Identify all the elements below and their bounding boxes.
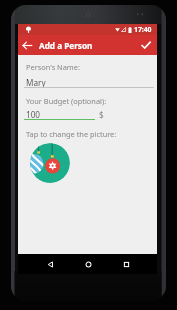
staticText: 100: [26, 109, 41, 120]
button[interactable]: Change the picture: [30, 143, 70, 183]
button[interactable]: Recent apps: [116, 254, 136, 274]
staticText: Tap to change the picture:: [26, 129, 117, 139]
button[interactable]: Save: [135, 35, 157, 55]
staticText: Your Budget (optional):: [26, 96, 107, 106]
staticText: Person's Name:: [26, 62, 80, 72]
button[interactable]: Home: [78, 254, 98, 274]
staticText: 17:40: [134, 25, 152, 34]
staticText: Add a Person: [39, 40, 93, 51]
staticText: Mary: [26, 77, 46, 88]
button[interactable]: Back: [40, 254, 60, 274]
button[interactable]: Navigate up: [18, 35, 37, 55]
staticText: $: [99, 109, 104, 120]
